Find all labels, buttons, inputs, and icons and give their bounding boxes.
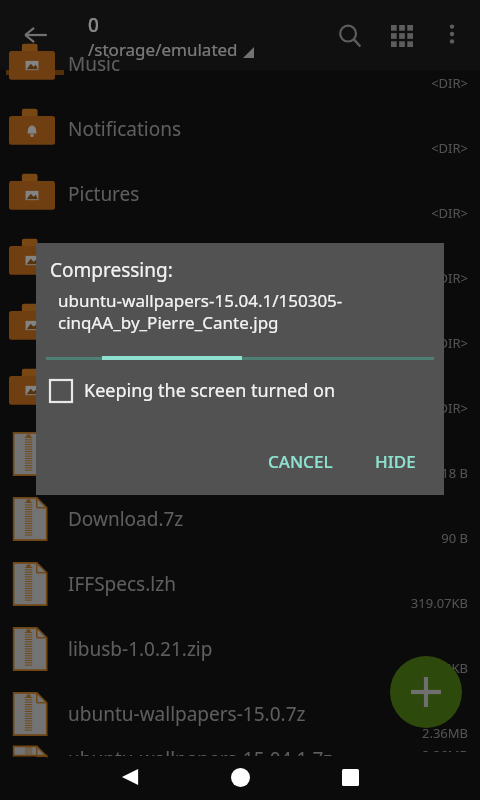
staticText: IFFSpecs.lzh <box>68 571 176 597</box>
button[interactable]: Download.7z <box>0 486 480 551</box>
button[interactable]: ubuntu-wallpapers-15.04.1.7z <box>0 746 480 756</box>
button[interactable]: Pictures <box>0 161 480 226</box>
staticText: 2.36MB <box>421 724 468 742</box>
staticText: HIDE <box>375 450 416 473</box>
staticText: <DIR> <box>431 74 468 92</box>
button[interactable]: HIDE <box>365 442 426 481</box>
button[interactable]: More options <box>428 10 476 58</box>
button[interactable]: Back <box>108 755 152 799</box>
button[interactable]: Grid view <box>376 10 428 62</box>
button[interactable]: ubuntu-wallpapers-15.0.7z <box>0 681 480 746</box>
staticText: 2.36MB <box>421 746 468 752</box>
staticText: <DIR> <box>431 269 468 287</box>
button[interactable]: CANCEL <box>258 442 343 481</box>
button[interactable]: Ringtones <box>0 291 480 356</box>
staticText: CANCEL <box>268 450 333 473</box>
staticText: obb <box>68 376 103 402</box>
staticText: ubuntu-wallpapers-15.0.7z <box>68 701 306 727</box>
button[interactable]: Notifications <box>0 96 480 161</box>
staticText: <DIR> <box>431 399 468 417</box>
staticText: 0 <box>88 12 99 38</box>
button[interactable]: Add <box>390 656 462 728</box>
button[interactable]: Search <box>324 10 376 62</box>
staticText: Notifications <box>68 116 182 142</box>
button[interactable]: archive.7z <box>0 421 480 486</box>
button[interactable]: 0 <box>88 12 254 61</box>
staticText: Ringtones <box>68 311 159 337</box>
staticText: /storage/emulated <box>88 38 238 61</box>
button[interactable]: Home <box>218 755 262 799</box>
staticText: 319.07KB <box>410 594 468 612</box>
staticText: 90 B <box>441 529 468 547</box>
staticText: ubuntu-wallpapers-15.04.1.7z <box>68 746 333 756</box>
staticText: <DIR> <box>431 139 468 157</box>
button[interactable]: Recents <box>328 755 372 799</box>
staticText: <DIR> <box>431 204 468 222</box>
staticText: libusb-1.0.21.zip <box>68 636 213 662</box>
staticText: Podcasts <box>68 246 148 272</box>
staticText: Download.7z <box>68 506 184 532</box>
staticText: 264KB <box>429 659 468 677</box>
staticText: Pictures <box>68 181 140 207</box>
button[interactable]: obb <box>0 356 480 421</box>
button[interactable]: Keeping the screen turned on <box>50 378 444 403</box>
staticText: ubuntu-wallpapers-15.04.1/150305-cinqAA_… <box>58 289 434 334</box>
staticText: Compressing: <box>50 257 173 283</box>
staticText: Keeping the screen turned on <box>84 378 336 403</box>
button[interactable]: libusb-1.0.21.zip <box>0 616 480 681</box>
button[interactable]: Podcasts <box>0 226 480 291</box>
staticText: Music <box>68 51 121 77</box>
staticText: <DIR> <box>431 334 468 352</box>
button[interactable]: Music <box>0 31 480 96</box>
staticText: 18 B <box>441 464 468 482</box>
button[interactable]: Back <box>12 11 60 59</box>
button[interactable]: IFFSpecs.lzh <box>0 551 480 616</box>
